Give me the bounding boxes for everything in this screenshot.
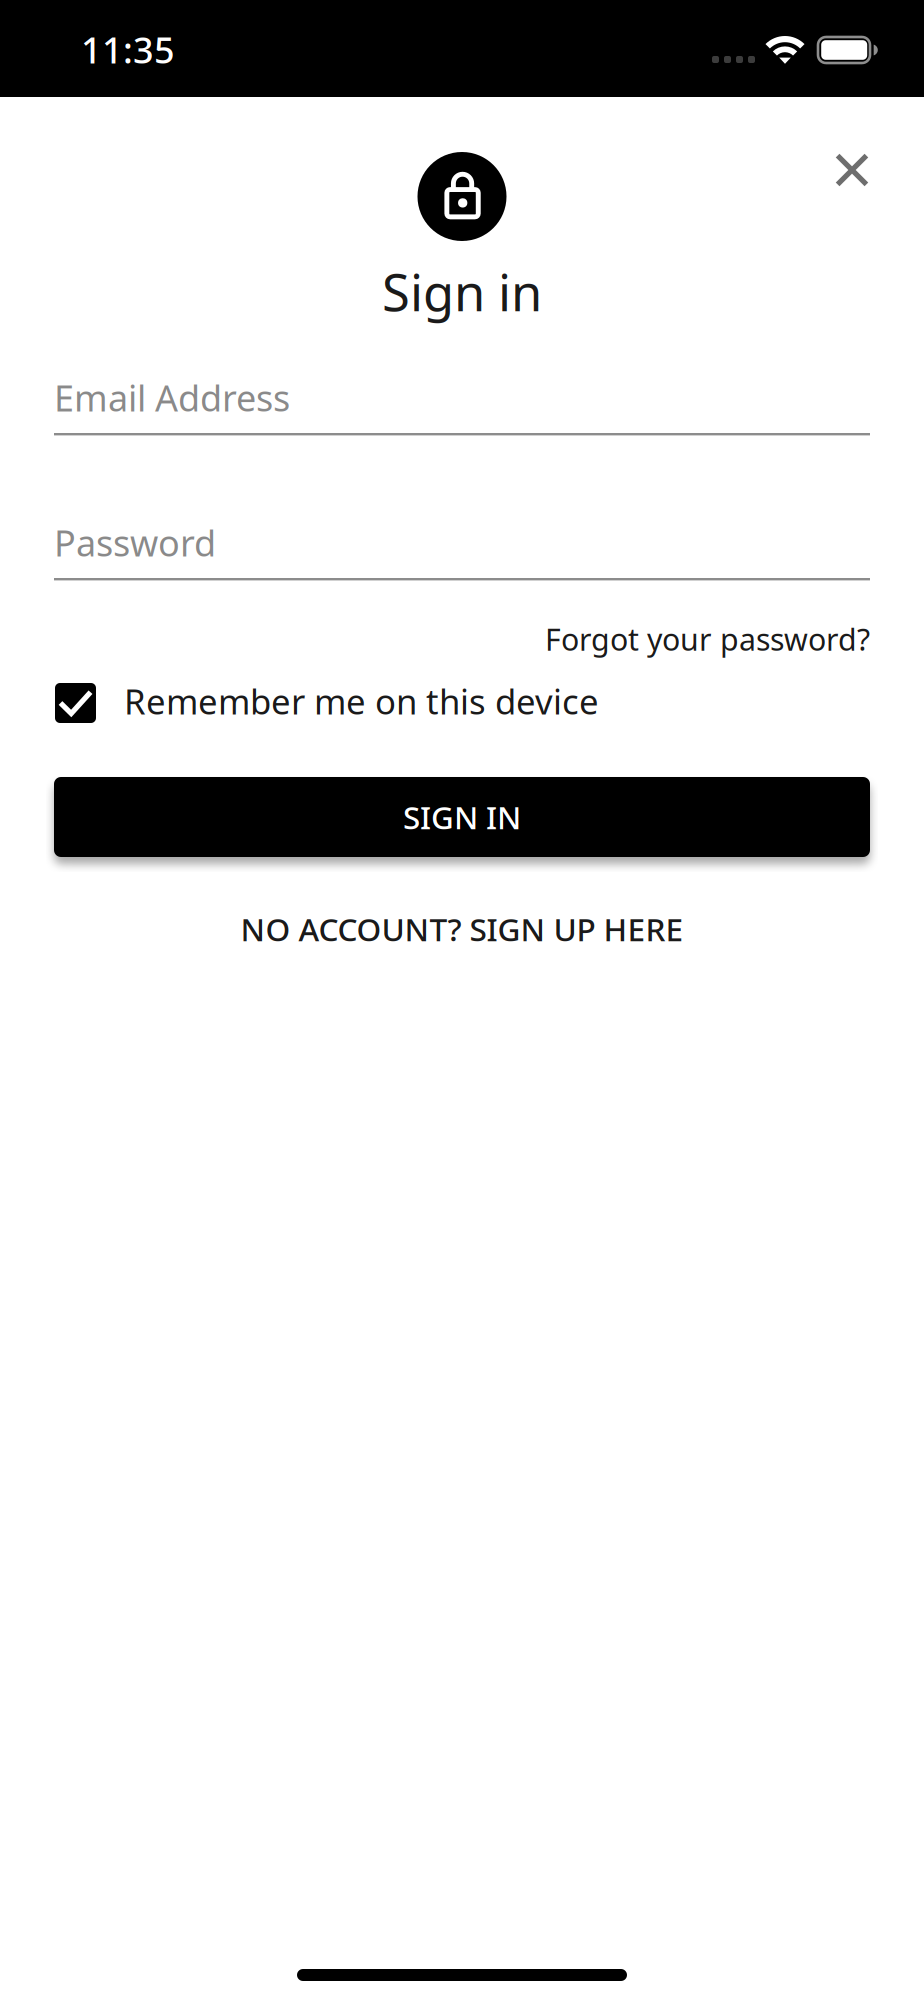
button[interactable]: SIGN IN — [54, 777, 870, 857]
button[interactable]: NO ACCOUNT? SIGN UP HERE — [54, 907, 870, 951]
staticText: NO ACCOUNT? SIGN UP HERE — [240, 907, 683, 950]
staticText: Remember me on this device — [124, 677, 599, 725]
button[interactable]: Remember me on this device — [55, 678, 871, 724]
staticText: 11:35 — [81, 25, 175, 74]
staticText: Password — [54, 518, 216, 567]
staticText: Sign in — [382, 257, 542, 326]
button[interactable]: Forgot your password? — [54, 617, 870, 661]
staticText: SIGN IN — [403, 796, 521, 838]
button[interactable]: Close — [814, 132, 890, 208]
staticText: Email Address — [54, 373, 290, 422]
staticText: Forgot your password? — [545, 618, 870, 660]
